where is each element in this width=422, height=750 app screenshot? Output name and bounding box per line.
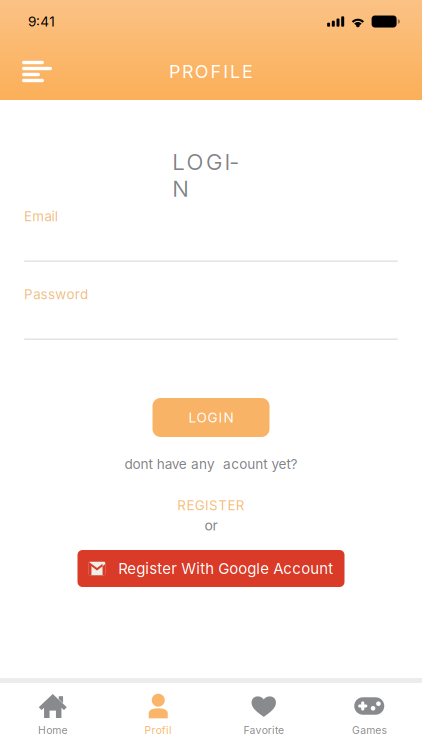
staticText: Password (24, 286, 88, 302)
button[interactable]: Open menu (0, 49, 66, 93)
staticText: or (204, 517, 217, 534)
button[interactable]: Favorite (211, 683, 316, 750)
button[interactable]: REGISTER (177, 499, 245, 512)
staticText: Register With Google Account (118, 559, 333, 578)
staticText: 9:41 (28, 13, 55, 30)
staticText: dont have any acount yet? (124, 456, 298, 472)
staticText: LOGIN (188, 409, 233, 426)
button[interactable]: Register With Google Account (77, 550, 344, 587)
staticText: REGISTER (177, 497, 245, 513)
button[interactable]: Games (316, 683, 422, 750)
staticText: Profil (144, 724, 172, 737)
staticText: LOGIN (172, 149, 250, 175)
staticText: Email (24, 208, 58, 224)
staticText: Favorite (243, 724, 284, 737)
button[interactable]: LOGIN (152, 398, 269, 437)
staticText: Games (352, 724, 386, 737)
staticText: Home (38, 724, 67, 737)
staticText: PROFILE (169, 61, 253, 82)
button[interactable]: Profil (105, 683, 211, 750)
button[interactable]: Home (0, 683, 105, 750)
